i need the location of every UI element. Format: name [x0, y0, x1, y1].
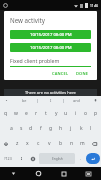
- staticText: New activity: [10, 16, 45, 24]
- button[interactable]: ?123: [0, 151, 16, 166]
- staticText: c: [37, 140, 40, 147]
- staticText: 11:46: [90, 4, 99, 8]
- button[interactable]: z: [12, 136, 22, 151]
- button[interactable]: t: [41, 106, 51, 121]
- button[interactable]: Fixed client problem: [10, 57, 91, 67]
- button[interactable]: l: [86, 121, 96, 136]
- button[interactable]: q: [0, 106, 11, 121]
- button[interactable]: CANCEL: [50, 70, 71, 77]
- button[interactable]: I: [38, 96, 63, 105]
- staticText: 10/15/2017 08:00 PM: [30, 45, 72, 51]
- button[interactable]: d: [26, 121, 36, 136]
- button[interactable]: b: [55, 136, 66, 151]
- staticText: and: [73, 98, 80, 103]
- button[interactable]: Home: [26, 167, 51, 180]
- staticText: i: [75, 110, 77, 117]
- staticText: o: [84, 110, 88, 117]
- button[interactable]: g: [46, 121, 56, 136]
- staticText: u: [64, 110, 68, 117]
- staticText: t: [45, 110, 47, 117]
- staticText: l: [90, 125, 92, 132]
- button[interactable]: m: [77, 136, 88, 151]
- staticText: j: [70, 125, 72, 132]
- staticText: a: [10, 125, 13, 132]
- button[interactable]: k: [76, 121, 86, 136]
- staticText: English: [52, 157, 63, 161]
- button[interactable]: v: [44, 136, 55, 151]
- staticText: w: [14, 110, 18, 117]
- button[interactable]: be: [12, 96, 37, 105]
- button[interactable]: Shift: [0, 136, 12, 151]
- button[interactable]: a: [6, 121, 16, 136]
- staticText: Fixed client problem: [10, 57, 60, 64]
- button[interactable]: Emoji: [16, 151, 27, 166]
- staticText: 10/15/2017 08:00 PM: [30, 32, 72, 38]
- button[interactable]: f: [36, 121, 46, 136]
- button[interactable]: r: [31, 106, 41, 121]
- button[interactable]: u: [61, 106, 71, 121]
- staticText: .: [80, 156, 82, 162]
- button[interactable]: h: [56, 121, 66, 136]
- button[interactable]: o: [81, 106, 91, 121]
- staticText: p: [94, 110, 98, 117]
- staticText: f: [40, 125, 42, 132]
- staticText: h: [59, 125, 63, 132]
- button[interactable]: w: [11, 106, 21, 121]
- staticText: DONE: [76, 71, 89, 76]
- staticText: s: [20, 125, 23, 132]
- button[interactable]: x: [22, 136, 33, 151]
- button[interactable]: 10/15/2017 08:00 PM: [10, 43, 91, 52]
- button[interactable]: Screenshot: [76, 167, 101, 180]
- staticText: k: [80, 125, 83, 132]
- button[interactable]: Recents: [51, 167, 76, 180]
- button[interactable]: Backspace: [88, 136, 101, 151]
- button[interactable]: p: [91, 106, 101, 121]
- button[interactable]: 10/15/2017 08:00 PM: [10, 30, 91, 39]
- button[interactable]: Language: [27, 151, 38, 166]
- staticText: m: [80, 140, 85, 147]
- staticText: b: [59, 140, 63, 147]
- button[interactable]: y: [51, 106, 61, 121]
- button[interactable]: DONE: [74, 70, 91, 77]
- button[interactable]: c: [33, 136, 44, 151]
- staticText: v: [48, 140, 51, 147]
- staticText: r: [35, 110, 38, 117]
- button[interactable]: Voice input: [89, 96, 101, 105]
- staticText: d: [29, 125, 33, 132]
- button[interactable]: There are no activities here: [4, 89, 97, 96]
- button[interactable]: s: [16, 121, 26, 136]
- button[interactable]: Space: [39, 153, 75, 164]
- button[interactable]: n: [66, 136, 77, 151]
- button[interactable]: i: [71, 106, 81, 121]
- staticText: I: [50, 98, 52, 103]
- staticText: be: [22, 98, 27, 103]
- staticText: e: [25, 110, 28, 117]
- staticText: z: [16, 140, 19, 147]
- button[interactable]: e: [21, 106, 31, 121]
- button[interactable]: and: [64, 96, 89, 105]
- button[interactable]: j: [66, 121, 76, 136]
- staticText: y: [55, 110, 58, 117]
- staticText: x: [26, 140, 29, 147]
- staticText: n: [70, 140, 74, 147]
- staticText: There are no activities here: [25, 90, 76, 95]
- button[interactable]: Back: [0, 167, 26, 180]
- staticText: ?123: [4, 156, 12, 161]
- button[interactable]: Settings: [0, 96, 12, 105]
- staticText: g: [49, 125, 53, 132]
- button[interactable]: Enter: [86, 153, 100, 164]
- staticText: q: [4, 110, 8, 117]
- staticText: CANCEL: [52, 71, 69, 76]
